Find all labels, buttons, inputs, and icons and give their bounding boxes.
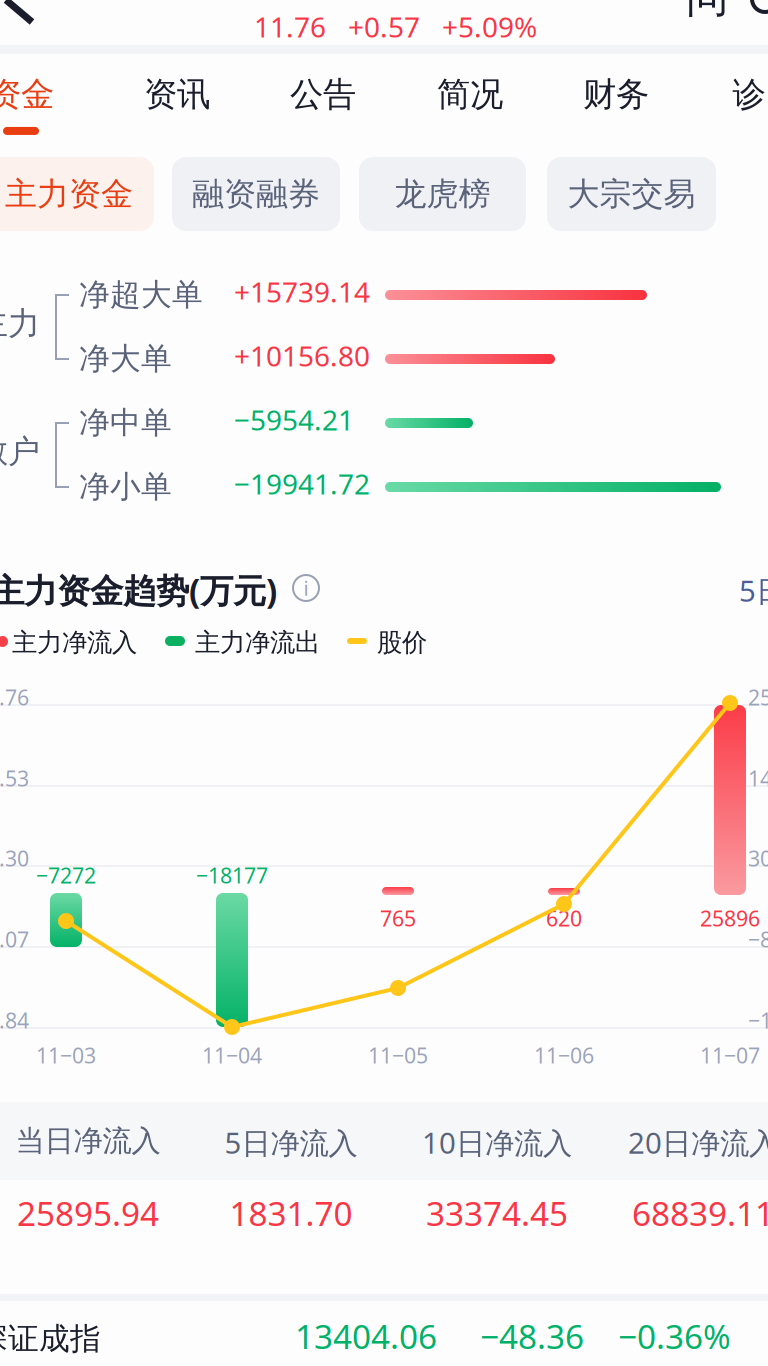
staticText: 散户 — [0, 432, 40, 471]
staticText: 25895.94 — [17, 1191, 159, 1235]
button[interactable]: 资金 — [0, 52, 54, 145]
staticText: 11.30 — [0, 844, 29, 872]
staticText: 14289 — [748, 764, 768, 792]
staticText: 11−03 — [36, 1041, 96, 1069]
staticText: 净中单 — [79, 404, 172, 442]
button[interactable]: 资讯 — [144, 52, 210, 145]
button[interactable]: 龙虎榜 — [359, 157, 526, 231]
staticText: 诊 — [732, 74, 765, 115]
button[interactable]: 大宗交易 — [547, 157, 716, 231]
staticText: 11−05 — [368, 1041, 428, 1069]
staticText: 主力净流入 — [12, 627, 137, 658]
staticText: −18177 — [196, 861, 268, 889]
button[interactable]: 5日 — [739, 571, 768, 610]
button[interactable]: 公告 — [290, 52, 356, 145]
staticText: 11−04 — [202, 1041, 262, 1069]
staticText: 11−06 — [534, 1041, 594, 1069]
staticText: −5954.21 — [234, 401, 354, 438]
staticText: 龙虎榜 — [394, 174, 490, 214]
staticText: 净超大单 — [79, 276, 203, 314]
staticText: 主力净流出 — [195, 627, 320, 658]
staticText: i — [303, 575, 308, 601]
staticText: +15739.14 — [234, 273, 370, 310]
staticText: 1831.70 — [229, 1191, 352, 1235]
staticText: 3086 — [748, 844, 768, 872]
staticText: 20日净流入 — [628, 1123, 768, 1162]
staticText: −19941.72 — [234, 465, 370, 502]
staticText: 11.76 — [254, 8, 326, 45]
button[interactable]: 诊 — [731, 52, 767, 145]
staticText: 主力资金趋势(万元) — [0, 568, 277, 612]
staticText: +5.09% — [442, 8, 537, 45]
staticText: −0.36% — [618, 1314, 731, 1358]
staticText: 10.84 — [0, 1006, 29, 1034]
staticText: 财务 — [583, 74, 649, 115]
staticText: −48.36 — [480, 1314, 584, 1358]
button[interactable]: Back — [0, 0, 44, 26]
staticText: +0.57 — [348, 8, 420, 45]
staticText: 68839.11 — [632, 1191, 768, 1235]
staticText: 25896 — [748, 683, 768, 711]
staticText: +10156.80 — [234, 337, 370, 374]
staticText: 765 — [380, 904, 416, 932]
button[interactable]: 融资融券 — [172, 157, 340, 231]
staticText: 25896 — [700, 904, 760, 932]
staticText: 公告 — [290, 74, 356, 115]
staticText: 10日净流入 — [422, 1123, 572, 1162]
staticText: 主力 — [0, 304, 40, 343]
staticText: 5日 — [739, 571, 768, 610]
staticText: 620 — [546, 904, 582, 932]
button[interactable]: 简况 — [437, 52, 503, 145]
staticText: 简况 — [437, 74, 503, 115]
button[interactable]: 财务 — [583, 52, 649, 145]
staticText: 资讯 — [144, 74, 210, 115]
staticText: 净大单 — [79, 340, 172, 378]
staticText: 净小单 — [79, 468, 172, 506]
staticText: 11.07 — [0, 925, 29, 953]
staticText: 主力资金 — [5, 174, 133, 214]
staticText: 11.53 — [0, 764, 29, 792]
staticText: −7272 — [36, 861, 96, 889]
staticText: 11.76 — [0, 683, 29, 711]
staticText: 融资融券 — [192, 174, 320, 214]
staticText: 大宗交易 — [567, 174, 695, 214]
button[interactable]: Ask — [686, 0, 729, 23]
staticText: 股价 — [377, 627, 427, 658]
staticText: 问 — [686, 0, 729, 23]
staticText: 11−07 — [700, 1041, 760, 1069]
staticText: 深证成指 — [0, 1320, 101, 1358]
button[interactable]: Info — [293, 575, 319, 601]
staticText: 资金 — [0, 74, 54, 115]
staticText: −19320 — [748, 1006, 768, 1034]
staticText: −8117 — [748, 925, 768, 953]
staticText: 5日净流入 — [224, 1123, 357, 1162]
staticText: 33374.45 — [426, 1191, 568, 1235]
button[interactable]: Search — [750, 0, 768, 16]
staticText: 当日净流入 — [15, 1123, 160, 1159]
staticText: 13404.06 — [295, 1314, 437, 1358]
button[interactable]: 主力资金 — [0, 157, 154, 231]
